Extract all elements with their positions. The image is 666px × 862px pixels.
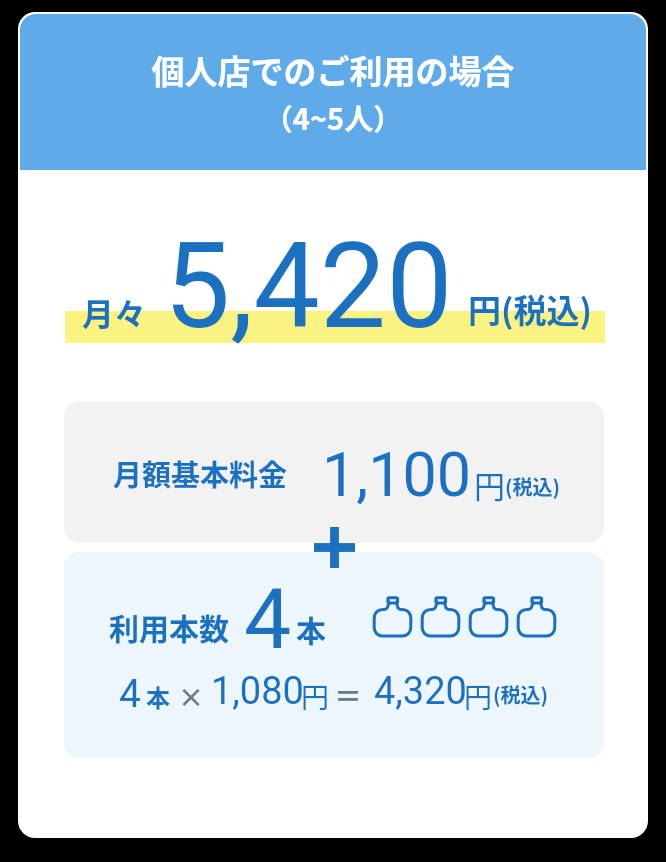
- staticText: 本: [296, 607, 326, 650]
- staticText: 1,080: [211, 669, 304, 714]
- button[interactable]: 個人店でのご利用の場合: [18, 12, 648, 838]
- staticText: 4,320: [374, 669, 467, 714]
- staticText: （4~5人）: [20, 96, 646, 138]
- staticText: (税込): [493, 680, 549, 709]
- staticText: 月額基本料金: [113, 452, 288, 494]
- staticText: 円(税込): [468, 285, 592, 333]
- staticText: 利用本数: [109, 605, 229, 648]
- staticText: 円: [474, 462, 505, 507]
- staticText: ＝: [334, 675, 363, 716]
- staticText: 円: [301, 676, 330, 717]
- staticText: 円: [464, 676, 493, 717]
- staticText: ×: [178, 677, 205, 715]
- staticText: 1,100: [322, 439, 472, 510]
- other: 水ボトル4本: [372, 596, 557, 638]
- staticText: 個人店でのご利用の場合: [20, 46, 646, 94]
- staticText: 本: [146, 679, 170, 714]
- staticText: 4: [119, 671, 141, 717]
- staticText: 月々: [82, 289, 147, 335]
- staticText: (税込): [505, 472, 561, 501]
- staticText: 5,420: [164, 218, 453, 356]
- staticText: 4: [244, 570, 292, 668]
